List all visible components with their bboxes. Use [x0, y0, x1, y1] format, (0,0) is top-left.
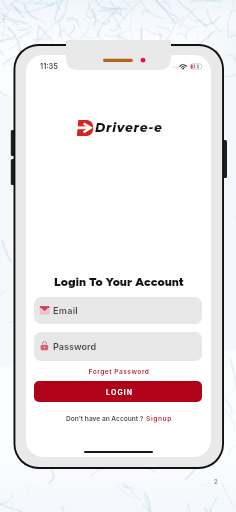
button[interactable]: Forget Password — [19, 368, 219, 376]
staticText: Drivere-e — [95, 120, 163, 135]
button[interactable] — [34, 332, 202, 361]
staticText: Email — [53, 305, 79, 316]
staticText: LOGIN — [106, 388, 134, 396]
staticText: Don't have an Account ? — [66, 415, 146, 423]
staticText: 2 — [214, 478, 218, 485]
staticText: Signup — [146, 415, 172, 423]
button[interactable]: Signup — [146, 415, 172, 423]
staticText: Forget Password — [19, 368, 219, 376]
staticText: Password — [53, 341, 97, 352]
button[interactable]: LOGIN — [34, 381, 202, 402]
staticText: Login To Your Account — [19, 274, 219, 289]
button[interactable] — [34, 297, 202, 324]
staticText: 11:35 — [40, 62, 58, 71]
